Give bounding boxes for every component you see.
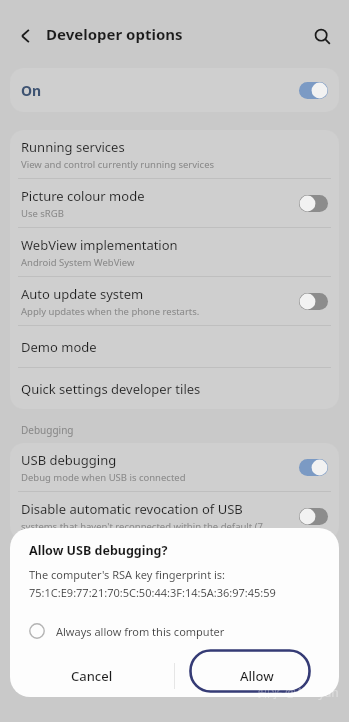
staticText: Allow [240, 667, 274, 685]
staticText: Auto update system [21, 285, 144, 303]
button[interactable]: Auto update system [10, 277, 339, 325]
staticText: Allow USB debugging? [29, 542, 168, 559]
staticText: Demo mode [21, 338, 97, 356]
button[interactable]: Always allow from this computer [29, 617, 320, 645]
button[interactable]: Search [305, 19, 339, 53]
button[interactable]: Quick settings developer tiles [10, 368, 339, 409]
staticText: Quick settings developer tiles [21, 380, 201, 398]
button[interactable]: USB debugging [10, 443, 339, 491]
button[interactable]: On [10, 68, 339, 112]
staticText: Debugging [21, 423, 74, 437]
staticText: USB debugging [21, 451, 117, 469]
button[interactable]: Back [10, 20, 42, 52]
button[interactable]: Cancel [10, 654, 174, 697]
staticText: 75:1C:E9:77:21:70:5C:50:44:3F:14:5A:36:9… [29, 585, 276, 600]
staticText: Always allow from this computer [56, 624, 225, 639]
button[interactable]: Picture colour mode [10, 179, 339, 227]
staticText: Cancel [71, 667, 113, 685]
button[interactable]: WebView implementation [10, 228, 339, 276]
staticText: On [21, 81, 42, 100]
staticText: systems that haven't reconnected within … [21, 520, 283, 533]
staticText: Picture colour mode [21, 187, 145, 205]
staticText: Debug mode when USB is connected [21, 471, 186, 484]
staticText: Use sRGB [21, 207, 64, 220]
button[interactable]: Allow [175, 654, 339, 697]
button[interactable]: Running services [10, 130, 339, 178]
button[interactable]: Disable automatic revocation of USB auth… [10, 492, 339, 540]
staticText: WebView implementation [21, 236, 178, 254]
staticText: Disable automatic revocation of USB auth… [21, 500, 283, 518]
staticText: Running services [21, 138, 125, 156]
staticText: Android System WebView [21, 256, 135, 269]
button[interactable]: Demo mode [10, 326, 339, 367]
staticText: 知乎 @AOcyan [258, 684, 339, 700]
staticText: Developer options [46, 24, 183, 44]
staticText: The computer's RSA key fingerprint is: [29, 567, 226, 582]
staticText: View and control currently running servi… [21, 158, 215, 171]
staticText: Apply updates when the phone restarts. [21, 305, 200, 318]
